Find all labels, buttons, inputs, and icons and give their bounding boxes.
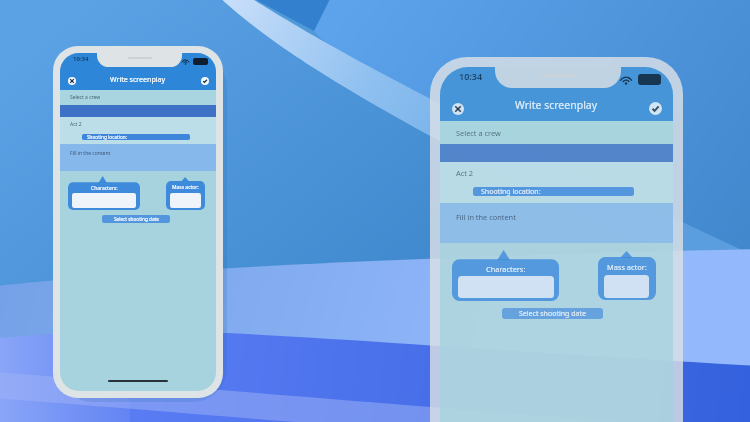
staticText: 10:34	[73, 55, 89, 63]
staticText: Select shooting date	[519, 309, 586, 319]
staticText: Write screenplay	[110, 74, 166, 84]
button[interactable]: Mass actor:	[598, 251, 656, 300]
button[interactable]: Characters:	[452, 250, 559, 301]
staticText: Mass actor:	[172, 184, 199, 191]
staticText: Shooting location:	[87, 134, 127, 140]
staticText: Select a crew	[70, 94, 101, 101]
button[interactable]: Shooting location:	[473, 187, 634, 196]
button[interactable]: Shooting location:	[82, 134, 190, 140]
staticText: Characters:	[486, 264, 526, 274]
button[interactable]: Confirm	[201, 77, 209, 85]
staticText: Shooting location:	[481, 187, 541, 196]
staticText: Select shooting date	[114, 216, 159, 222]
button[interactable]: Close	[68, 77, 76, 85]
button[interactable]: Mass actor:	[166, 177, 205, 210]
staticText: Act 2	[456, 168, 474, 178]
staticText: Write screenplay	[515, 98, 598, 112]
button[interactable]: Select shooting date	[102, 215, 170, 223]
button[interactable]: Characters:	[68, 176, 140, 210]
staticText: Characters:	[91, 185, 118, 192]
button[interactable]: Select shooting date	[502, 308, 603, 319]
button[interactable]: Close	[452, 103, 464, 115]
button[interactable]: Confirm	[649, 102, 662, 115]
staticText: 10:34	[459, 70, 483, 82]
staticText: Fill in the content	[70, 150, 111, 157]
staticText: Mass actor:	[607, 262, 647, 272]
staticText: Select a crew	[456, 128, 501, 138]
staticText: Act 2	[70, 121, 82, 128]
staticText: Fill in the content	[456, 212, 516, 222]
